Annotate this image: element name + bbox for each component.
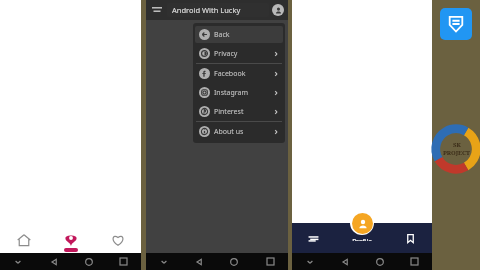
staticText: Profile bbox=[352, 237, 372, 241]
button[interactable]: Android With Lucky bbox=[167, 3, 269, 17]
button[interactable]: Privacy bbox=[195, 45, 283, 62]
button[interactable]: Home bbox=[0, 227, 47, 253]
staticText: Instagram bbox=[214, 88, 249, 98]
other: Location bbox=[64, 233, 78, 247]
staticText: Pinterest bbox=[214, 107, 244, 117]
button[interactable]: Account bbox=[272, 4, 284, 16]
staticText: Back bbox=[214, 30, 230, 40]
staticText: About us bbox=[214, 127, 244, 137]
button[interactable]: Menu bbox=[292, 223, 335, 253]
button[interactable]: Favorites bbox=[94, 227, 141, 253]
button[interactable]: Facebook bbox=[195, 65, 283, 82]
button[interactable]: About us bbox=[195, 123, 283, 140]
other: Favorites bbox=[111, 233, 125, 247]
staticText: Privacy bbox=[214, 49, 238, 59]
button[interactable]: Open navigation menu bbox=[150, 3, 164, 17]
other: Bookmarks bbox=[405, 233, 416, 244]
button[interactable]: Back bbox=[195, 26, 283, 43]
staticText: Facebook bbox=[214, 69, 246, 79]
other: Menu bbox=[308, 233, 319, 244]
other: Home bbox=[17, 233, 31, 247]
staticText: Android With Lucky bbox=[172, 5, 241, 15]
button[interactable]: Bookmarks bbox=[388, 223, 432, 253]
button[interactable]: Location bbox=[47, 227, 94, 253]
staticText: PROJECT bbox=[443, 149, 470, 157]
button[interactable]: Profile bbox=[352, 213, 373, 234]
button[interactable]: Pinterest bbox=[195, 103, 283, 120]
button[interactable]: Instagram bbox=[195, 84, 283, 101]
staticText: SK bbox=[453, 141, 461, 149]
